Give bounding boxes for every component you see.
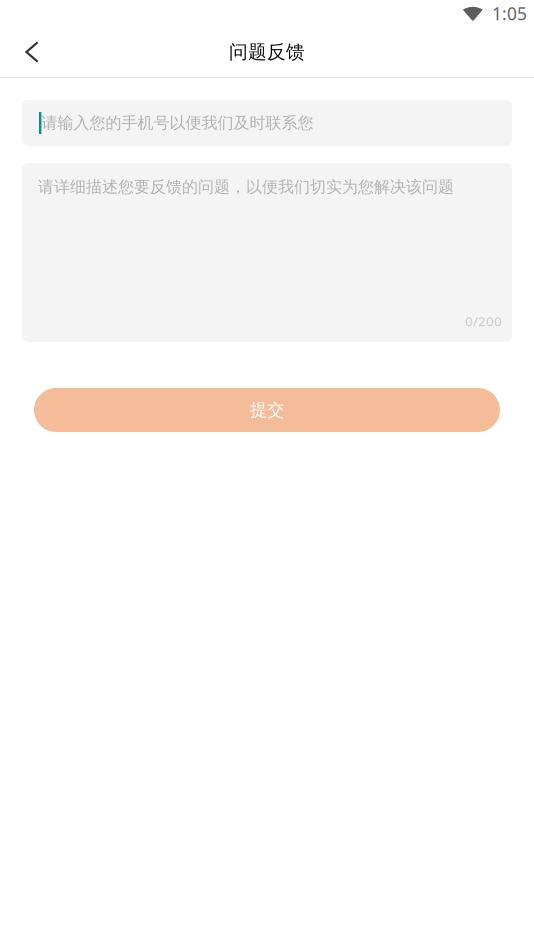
staticText: 1:05 xyxy=(492,2,527,25)
staticText: 提交 xyxy=(250,399,284,421)
button[interactable]: Back xyxy=(0,28,64,76)
button[interactable]: 提交 xyxy=(34,388,500,432)
button[interactable]: 请输入您的手机号以便我们及时联系您 xyxy=(22,100,512,146)
staticText: 请详细描述您要反馈的问题，以便我们切实为您解决该问题 xyxy=(38,177,454,197)
button[interactable]: 请详细描述您要反馈的问题，以便我们切实为您解决该问题 xyxy=(22,163,512,342)
staticText: 0/200 xyxy=(465,312,502,330)
staticText: 请输入您的手机号以便我们及时联系您 xyxy=(41,113,313,133)
staticText: 问题反馈 xyxy=(229,40,305,63)
